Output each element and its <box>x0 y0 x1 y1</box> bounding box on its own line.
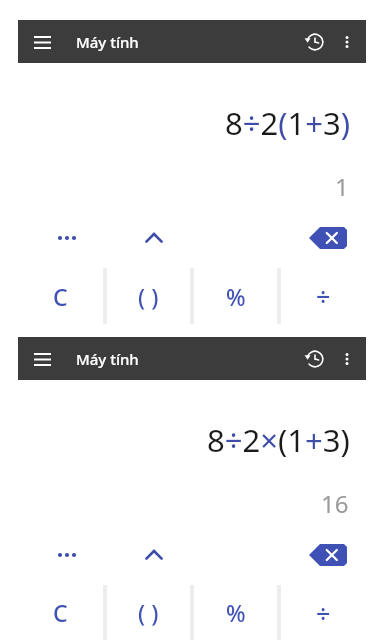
button[interactable]: Expand <box>136 220 172 256</box>
staticText: 8÷2×(1+3) <box>207 419 350 461</box>
button[interactable]: ( ) <box>107 585 190 640</box>
button[interactable]: Menu <box>28 28 56 56</box>
staticText: ÷ <box>316 596 331 630</box>
button[interactable]: ( ) <box>107 268 190 324</box>
staticText: 16 <box>321 487 349 520</box>
staticText: C <box>53 597 68 628</box>
button[interactable]: % <box>194 585 277 640</box>
staticText: % <box>226 281 246 312</box>
staticText: ( ) <box>138 281 159 312</box>
staticText: ÷ <box>316 279 331 313</box>
staticText: 1 <box>335 170 349 203</box>
button[interactable]: More functions <box>50 538 84 572</box>
button[interactable]: C <box>18 268 103 324</box>
staticText: % <box>226 597 246 628</box>
button[interactable]: More options <box>332 344 362 374</box>
staticText: Máy tính <box>76 349 139 369</box>
button[interactable]: C <box>18 585 103 640</box>
button[interactable]: More options <box>332 27 362 57</box>
button[interactable]: Backspace <box>306 223 350 253</box>
button[interactable]: Backspace <box>306 540 350 570</box>
button[interactable]: ÷ <box>281 268 366 324</box>
button[interactable]: ÷ <box>281 585 366 640</box>
staticText: 8÷2(1+3) <box>225 102 350 144</box>
staticText: Máy tính <box>76 32 139 52</box>
staticText: C <box>53 281 68 312</box>
button[interactable]: Menu <box>28 345 56 373</box>
button[interactable]: History <box>298 25 332 59</box>
button[interactable]: History <box>298 342 332 376</box>
button[interactable]: Expand <box>136 537 172 573</box>
button[interactable]: % <box>194 268 277 324</box>
button[interactable]: More functions <box>50 221 84 255</box>
staticText: ( ) <box>138 597 159 628</box>
